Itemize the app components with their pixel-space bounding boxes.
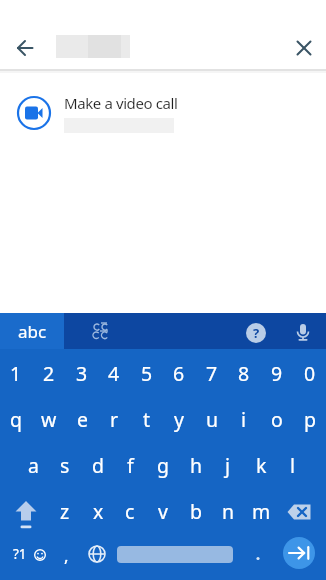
staticText: a	[28, 452, 39, 479]
staticText: t	[143, 406, 151, 433]
button[interactable]	[80, 313, 128, 349]
staticText: b	[190, 498, 202, 525]
button[interactable]: x	[82, 496, 114, 526]
button[interactable]: t	[131, 404, 163, 434]
button[interactable]: i	[228, 404, 260, 434]
button[interactable]: 2	[33, 358, 65, 388]
button[interactable]: 5	[131, 358, 163, 388]
staticText: 6	[173, 360, 185, 387]
staticText: c	[125, 498, 135, 525]
button[interactable]: d	[82, 450, 114, 480]
staticText: f	[127, 452, 134, 479]
staticText: 2	[43, 360, 55, 387]
staticText: g	[157, 452, 169, 479]
button[interactable]: s	[49, 450, 81, 480]
button[interactable]: ,	[50, 540, 82, 570]
staticText: 8	[238, 360, 250, 387]
staticText: w	[41, 406, 57, 433]
button[interactable]: ?1	[6, 541, 34, 567]
staticText: m	[252, 498, 271, 525]
button[interactable]: ?	[246, 323, 266, 343]
button[interactable]: p	[294, 404, 326, 434]
button[interactable]: m	[245, 496, 277, 526]
button[interactable]: 0	[294, 358, 326, 388]
button[interactable]	[293, 323, 313, 343]
button[interactable]: o	[261, 404, 293, 434]
staticText: 7	[206, 360, 218, 387]
button[interactable]: c	[114, 496, 146, 526]
button[interactable]: u	[196, 404, 228, 434]
staticText: ?	[253, 324, 260, 342]
staticText: k	[256, 452, 267, 479]
button[interactable]: 9	[261, 358, 293, 388]
staticText: q	[10, 406, 22, 433]
button[interactable]: e	[66, 404, 98, 434]
staticText: 3	[76, 360, 88, 387]
staticText: z	[60, 498, 70, 525]
staticText: e	[77, 406, 88, 433]
staticText: r	[110, 406, 119, 433]
button[interactable]	[117, 546, 233, 563]
button[interactable]: 3	[66, 358, 98, 388]
staticText: 0	[304, 360, 316, 387]
button[interactable]: v	[147, 496, 179, 526]
staticText: v	[158, 498, 168, 525]
staticText: 4	[108, 360, 120, 387]
staticText: abc	[18, 320, 47, 343]
button[interactable]	[86, 543, 108, 565]
button[interactable]	[250, 544, 266, 566]
staticText: x	[93, 498, 104, 525]
button[interactable]: 4	[98, 358, 130, 388]
button[interactable]: k	[245, 450, 277, 480]
button[interactable]: 7	[196, 358, 228, 388]
button[interactable]: 8	[228, 358, 260, 388]
button[interactable]: z	[49, 496, 81, 526]
button[interactable]: q	[0, 404, 32, 434]
button[interactable]	[292, 36, 316, 60]
staticText: d	[92, 452, 104, 479]
button[interactable]	[12, 498, 40, 532]
button[interactable]	[284, 500, 316, 524]
button[interactable]: f	[114, 450, 146, 480]
staticText: 1	[10, 360, 22, 387]
button[interactable]: w	[33, 404, 65, 434]
staticText: i	[241, 406, 247, 433]
staticText: ?1	[13, 545, 27, 563]
button[interactable]: 6	[163, 358, 195, 388]
staticText: p	[304, 406, 316, 433]
button[interactable]: n	[212, 496, 244, 526]
button[interactable]: r	[98, 404, 130, 434]
button[interactable]: h	[180, 450, 212, 480]
button[interactable]	[32, 547, 48, 563]
staticText: o	[271, 406, 283, 433]
staticText: s	[60, 452, 70, 479]
button[interactable]: l	[277, 450, 309, 480]
staticText: l	[290, 452, 296, 479]
button[interactable]	[13, 36, 37, 60]
button[interactable]: Make a video call	[0, 78, 326, 140]
button[interactable]: j	[212, 450, 244, 480]
staticText: Make a video call	[64, 93, 178, 113]
staticText: u	[206, 406, 219, 433]
staticText: ,	[64, 544, 69, 567]
button[interactable]	[283, 537, 315, 569]
staticText: h	[190, 452, 203, 479]
button[interactable]: a	[17, 450, 49, 480]
button[interactable]: b	[180, 496, 212, 526]
staticText: 5	[141, 360, 153, 387]
button[interactable]: 1	[0, 358, 32, 388]
staticText: 9	[271, 360, 283, 387]
staticText: y	[174, 406, 184, 433]
staticText: j	[225, 452, 231, 479]
button[interactable]	[56, 35, 130, 58]
button[interactable]: abc	[0, 313, 64, 349]
staticText: n	[222, 498, 235, 525]
button[interactable]: g	[147, 450, 179, 480]
button[interactable]: y	[163, 404, 195, 434]
